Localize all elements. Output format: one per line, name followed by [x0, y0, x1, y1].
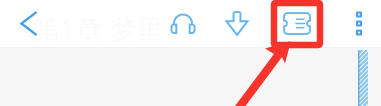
staticText: 第1章 梦里: [33, 11, 164, 46]
button[interactable]: Back: [9, 0, 49, 47]
button[interactable]: More: [339, 0, 379, 47]
button[interactable]: Listen: [161, 0, 205, 47]
button[interactable]: Coupons: [275, 0, 319, 47]
button[interactable]: Download: [215, 0, 259, 47]
